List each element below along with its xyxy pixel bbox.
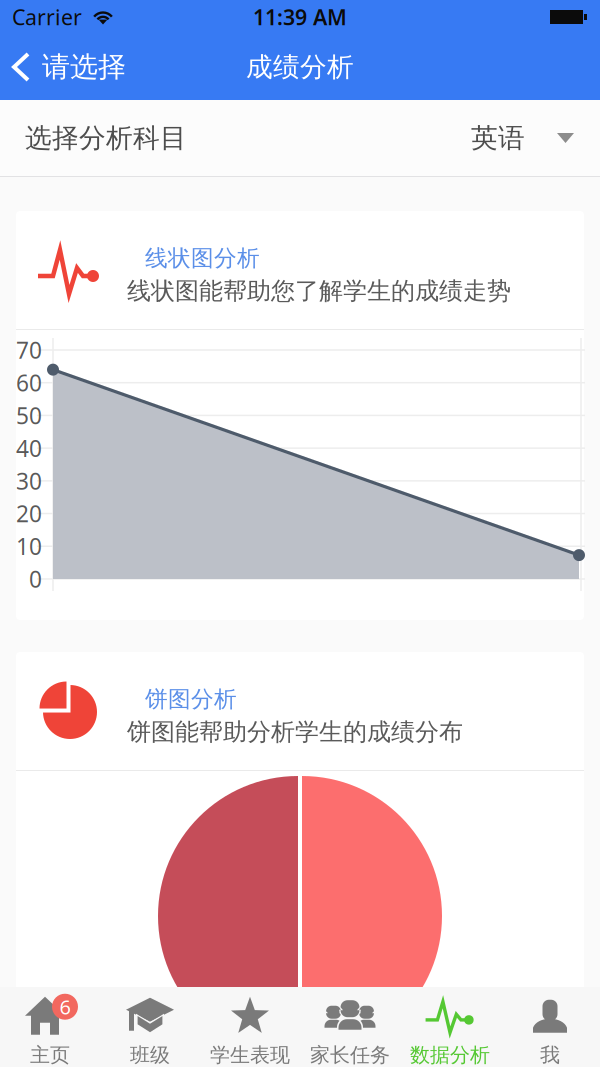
staticText: 11:39 AM [253, 3, 347, 31]
staticText: 线状图能帮助您了解学生的成绩走势 [127, 276, 511, 306]
staticText: 家长任务 [310, 1043, 390, 1067]
button[interactable]: 选择分析科目 [0, 100, 600, 176]
staticText: 40 [16, 433, 42, 463]
staticText: 50 [16, 400, 42, 430]
staticText: 成绩分析 [246, 51, 354, 83]
button[interactable]: 我 [500, 987, 600, 1067]
staticText: 班级 [130, 1043, 170, 1067]
staticText: 0 [29, 564, 42, 594]
button[interactable]: 家长任务 [300, 987, 400, 1067]
staticText: 60 [16, 368, 42, 398]
staticText: Carrier [12, 3, 82, 31]
staticText: 6 [59, 993, 70, 1020]
staticText: 20 [16, 498, 42, 529]
button[interactable]: 数据分析 [400, 987, 500, 1067]
staticText: 请选择 [42, 50, 126, 84]
staticText: 30 [16, 466, 42, 496]
staticText: 10 [16, 531, 42, 561]
staticText: 英语 [471, 122, 525, 154]
staticText: 饼图能帮助分析学生的成绩分布 [127, 717, 463, 747]
staticText: 饼图分析 [145, 685, 237, 713]
staticText: 我 [540, 1043, 560, 1067]
button[interactable]: 学生表现 [200, 987, 300, 1067]
staticText: 学生表现 [210, 1043, 290, 1067]
button[interactable]: 请选择 [0, 34, 140, 100]
staticText: 70 [16, 335, 42, 365]
staticText: 数据分析 [410, 1043, 490, 1067]
staticText: 线状图分析 [145, 244, 260, 272]
staticText: 主页 [30, 1043, 70, 1067]
button[interactable]: 6 [0, 987, 100, 1067]
staticText: 选择分析科目 [25, 122, 187, 154]
button[interactable]: 班级 [100, 987, 200, 1067]
